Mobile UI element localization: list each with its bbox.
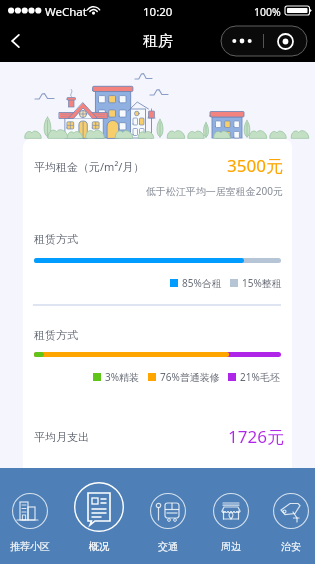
staticText: 租房 [143, 32, 173, 51]
staticText: 推荐小区 [10, 540, 50, 553]
staticText: 租赁方式 [34, 232, 78, 246]
staticText: 交通 [158, 540, 178, 553]
staticText: 3%精装 [105, 370, 140, 384]
button[interactable]: 周边 [203, 468, 259, 564]
staticText: 治安 [281, 540, 301, 553]
button[interactable]: Back [2, 27, 30, 55]
staticText: 85%合租 [182, 276, 222, 290]
button[interactable]: Close [264, 26, 307, 56]
staticText: 21%毛坯 [240, 370, 280, 384]
button[interactable]: 推荐小区 [2, 468, 58, 564]
button[interactable]: 治安 [263, 468, 315, 564]
staticText: 3500元 [23, 154, 283, 177]
staticText: 1726元 [23, 425, 284, 448]
button[interactable]: More [221, 26, 263, 56]
button[interactable]: 概况 [71, 468, 127, 564]
staticText: 平均月支出 [34, 430, 89, 444]
staticText: 租赁方式 [34, 328, 78, 342]
staticText: 10:20 [143, 4, 173, 20]
staticText: 概况 [89, 540, 109, 553]
staticText: 周边 [221, 540, 241, 553]
button[interactable]: 交通 [140, 468, 196, 564]
staticText: 100% [254, 5, 281, 19]
staticText: 低于松江平均一居室租金200元 [23, 184, 283, 198]
staticText: 76%普通装修 [160, 370, 220, 384]
staticText: 15%整租 [242, 276, 282, 290]
staticText: 平均租金（元/m²/月） [34, 159, 145, 174]
staticText: WeChat [45, 4, 87, 20]
